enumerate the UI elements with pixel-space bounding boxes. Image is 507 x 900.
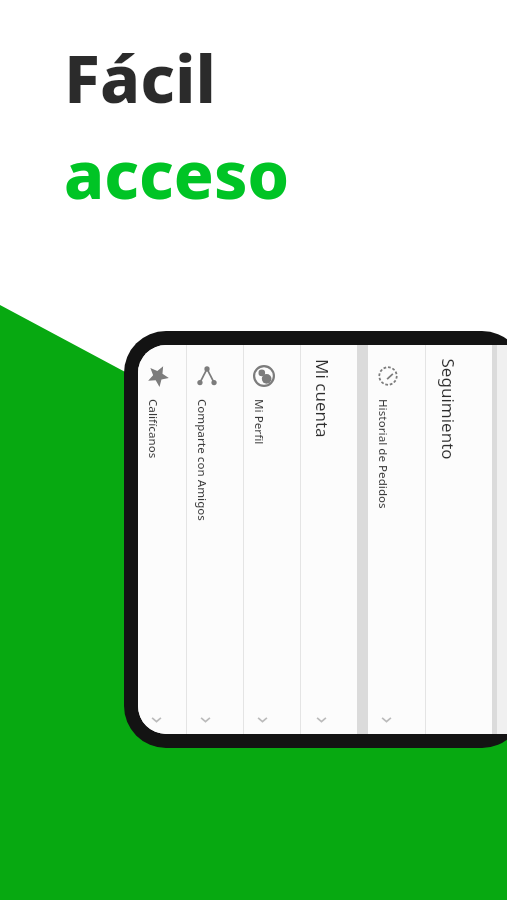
staticText: Mi cuenta [311,359,334,438]
button[interactable]: Mi cuenta [301,345,357,734]
staticText: Comparte con Amigos [194,399,210,521]
button[interactable]: Comparte con Amigos [187,345,243,734]
staticText: Historial de Pedidos [375,399,391,509]
staticText: Seguimiento [436,358,459,460]
staticText: acceso [64,128,290,218]
button[interactable]: Mi Perfil [244,345,300,734]
staticText: Mi Perfil [251,399,267,445]
button[interactable]: Seguimiento [426,345,492,734]
button[interactable]: Historial de Pedidos [368,345,425,734]
button[interactable]: Califícanos [138,345,186,734]
staticText: Califícanos [145,399,161,459]
staticText: Fácil [64,32,216,122]
